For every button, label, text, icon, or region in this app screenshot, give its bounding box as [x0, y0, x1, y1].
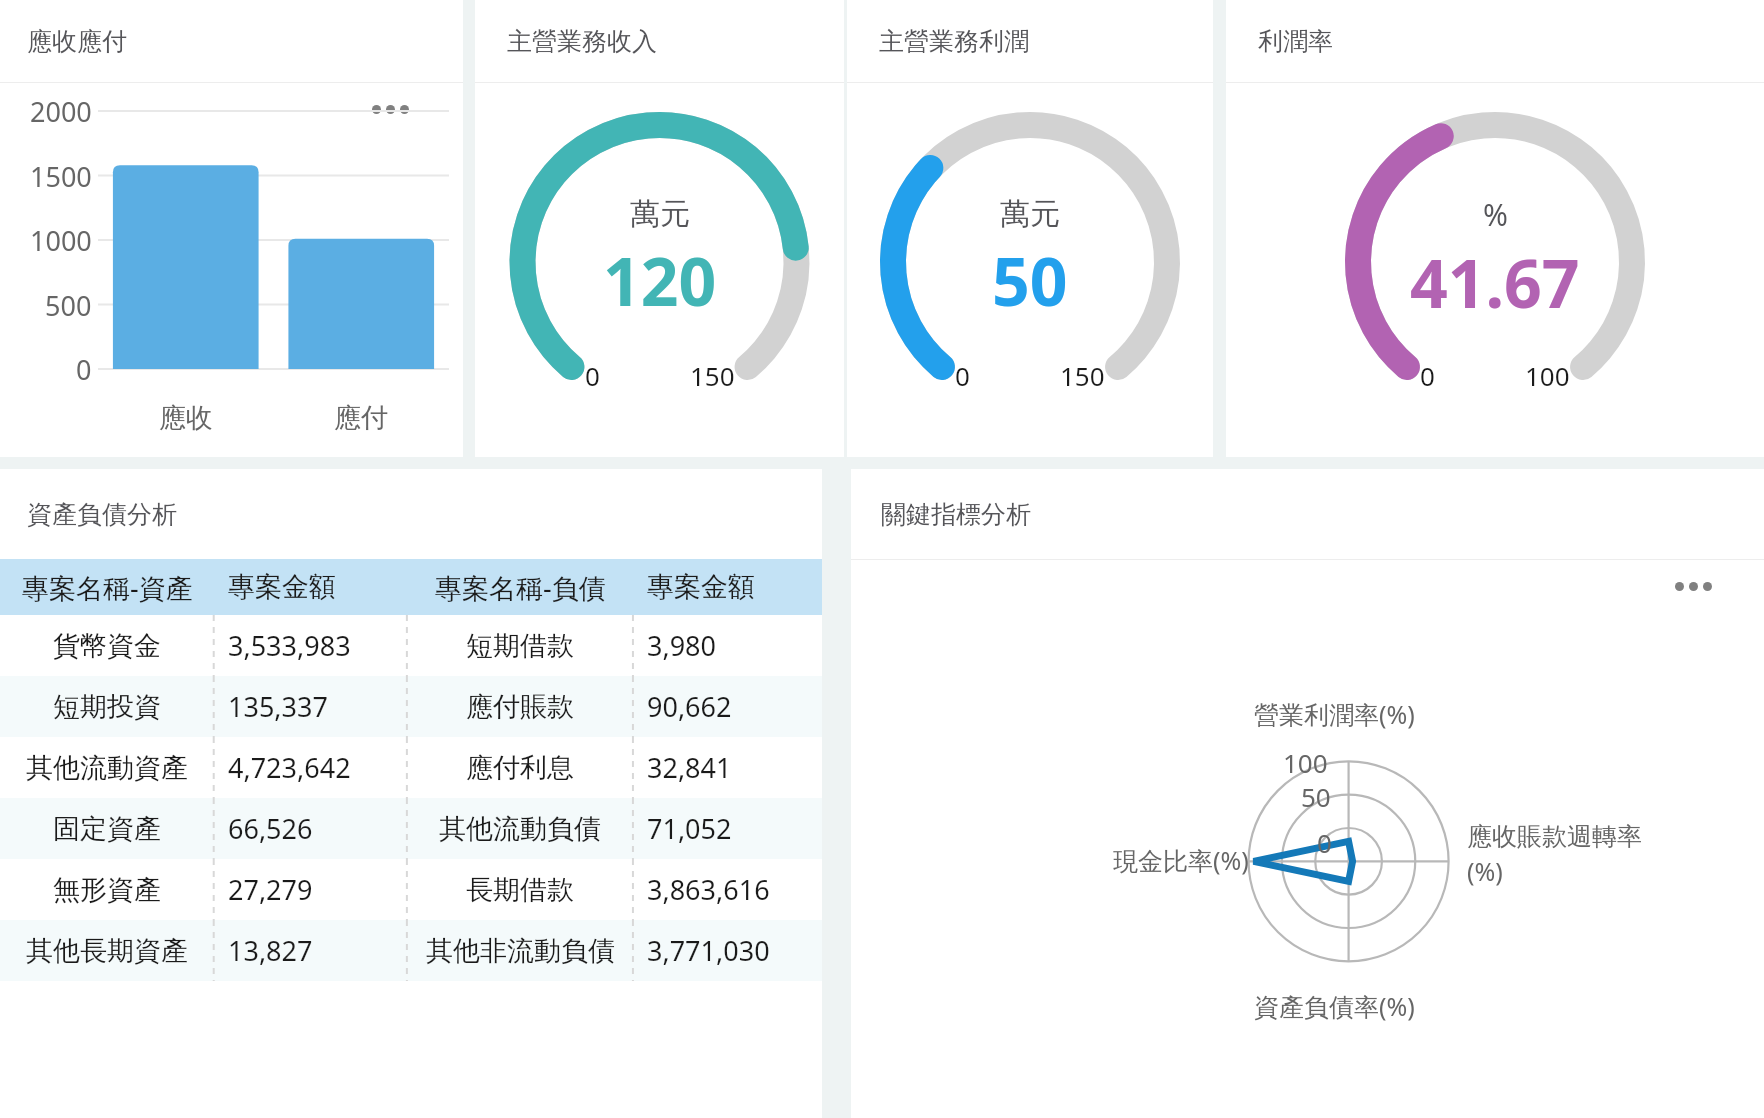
staticText: 3,980: [647, 627, 717, 664]
staticText: 0: [76, 351, 92, 387]
staticText: 66,526: [228, 810, 313, 847]
staticText: 90,662: [647, 688, 732, 725]
staticText: 應收: [159, 401, 213, 435]
staticText: 現金比率(%): [1113, 843, 1249, 877]
staticText: 0: [955, 358, 970, 393]
button[interactable]: 固定資產: [0, 798, 822, 859]
staticText: 利潤率: [1258, 26, 1333, 57]
staticText: 0: [585, 358, 600, 393]
staticText: 32,841: [647, 749, 732, 786]
staticText: 萬元: [1000, 195, 1060, 233]
staticText: 短期投資: [53, 690, 161, 724]
staticText: 資產負債率(%): [1254, 989, 1415, 1023]
staticText: 專案名稱-資產: [22, 569, 193, 606]
staticText: %: [1483, 194, 1508, 235]
staticText: 71,052: [647, 810, 732, 847]
staticText: 2000: [30, 93, 92, 129]
button[interactable]: More options: [1671, 578, 1716, 595]
staticText: 應付賬款: [466, 690, 574, 724]
button[interactable]: 貨幣資金: [0, 615, 822, 676]
staticText: 其他非流動負債: [426, 934, 615, 968]
staticText: 3,771,030: [647, 932, 770, 969]
staticText: 150: [1060, 358, 1105, 393]
staticText: 1500: [30, 158, 92, 194]
staticText: 500: [45, 287, 92, 323]
button[interactable]: 其他長期資產: [0, 920, 822, 981]
staticText: 100: [1283, 745, 1328, 780]
staticText: 0: [1317, 825, 1332, 860]
staticText: 其他流動資產: [26, 751, 188, 785]
staticText: 短期借款: [466, 629, 574, 663]
staticText: 長期借款: [466, 873, 574, 907]
staticText: 1000: [30, 222, 92, 258]
staticText: 專案名稱-負債: [435, 569, 606, 606]
staticText: 3,533,983: [228, 627, 351, 664]
button[interactable]: More options: [368, 101, 413, 118]
staticText: 其他流動負債: [439, 812, 601, 846]
staticText: 27,279: [228, 871, 313, 908]
button[interactable]: 無形資產: [0, 859, 822, 920]
staticText: 無形資產: [53, 873, 161, 907]
staticText: 主營業務利潤: [879, 26, 1029, 57]
button[interactable]: 其他流動資產: [0, 737, 822, 798]
staticText: 135,337: [228, 688, 328, 725]
staticText: 萬元: [630, 195, 690, 233]
staticText: 3,863,616: [647, 871, 770, 908]
staticText: 0: [1420, 358, 1435, 393]
staticText: 主營業務收入: [507, 26, 657, 57]
staticText: 50: [992, 235, 1068, 325]
staticText: 4,723,642: [228, 749, 351, 786]
staticText: 應付利息: [466, 751, 574, 785]
staticText: 固定資產: [53, 812, 161, 846]
staticText: 150: [690, 358, 735, 393]
staticText: 專案金額: [647, 570, 755, 604]
staticText: 100: [1525, 358, 1570, 393]
staticText: 13,827: [228, 932, 313, 969]
staticText: 資產負債分析: [27, 499, 177, 530]
staticText: 貨幣資金: [53, 629, 161, 663]
staticText: 其他長期資產: [26, 934, 188, 968]
staticText: 營業利潤率(%): [1254, 697, 1415, 731]
staticText: 應付: [334, 401, 388, 435]
staticText: 專案金額: [228, 570, 336, 604]
button[interactable]: 短期投資: [0, 676, 822, 737]
staticText: 應收應付: [27, 26, 127, 57]
staticText: 41.67: [1410, 237, 1580, 327]
staticText: 120: [603, 235, 717, 325]
staticText: 50: [1301, 779, 1331, 814]
staticText: 關鍵指標分析: [881, 499, 1031, 530]
staticText: 應收賬款週轉率 (%): [1467, 821, 1642, 888]
